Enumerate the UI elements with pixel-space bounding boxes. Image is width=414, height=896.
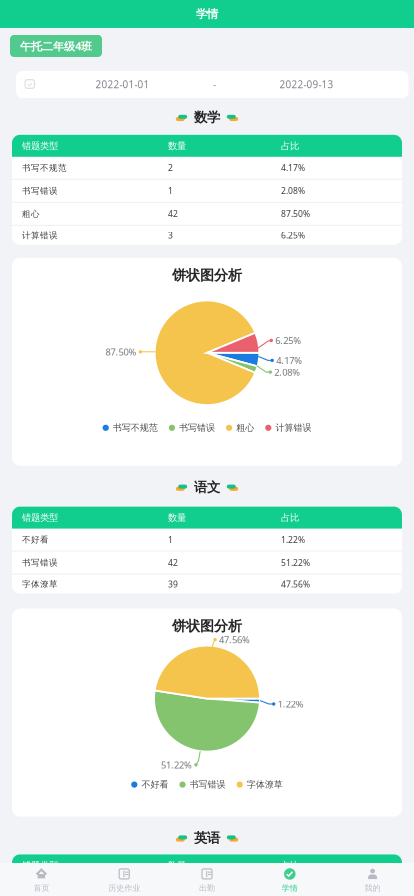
staticText: 语文	[194, 479, 220, 496]
staticText: 占比	[281, 140, 299, 152]
staticText: 6.25%	[275, 334, 301, 347]
staticText: 占比	[281, 859, 299, 871]
staticText: 错题类型	[22, 512, 58, 523]
staticText: 47.56%	[219, 633, 250, 646]
staticText: 计算错误	[22, 230, 58, 241]
staticText: 1	[168, 185, 173, 197]
staticText: 数量	[168, 512, 186, 523]
staticText: 学情	[196, 7, 218, 21]
staticText: 2.08%	[281, 185, 305, 197]
button[interactable]: 历史作业	[83, 863, 166, 896]
staticText: 错题类型	[22, 140, 58, 152]
staticText: 粗心	[22, 208, 40, 219]
staticText: 87.50%	[105, 345, 136, 358]
staticText: 4.17%	[281, 162, 305, 174]
button[interactable]: 学情	[248, 863, 331, 896]
staticText: 首页	[33, 883, 49, 893]
staticText: 51.22%	[281, 557, 310, 568]
button[interactable]: 午托二年级4班	[10, 35, 102, 57]
staticText: 51.22%	[161, 758, 192, 771]
staticText: 粗心	[236, 422, 254, 433]
staticText: 42	[168, 557, 178, 568]
staticText: 占比	[281, 512, 299, 523]
staticText: 英语	[194, 830, 220, 846]
staticText: 数量	[168, 859, 186, 871]
button[interactable]: 首页	[0, 863, 83, 896]
staticText: 4.17%	[276, 354, 302, 367]
staticText: 历史作业	[108, 883, 140, 893]
staticText: 字体潦草	[22, 579, 58, 589]
staticText: -	[213, 78, 216, 91]
staticText: 42	[168, 208, 178, 220]
staticText: 1.22%	[278, 698, 304, 710]
staticText: 2.08%	[274, 366, 300, 378]
staticText: 学情	[282, 883, 298, 893]
staticText: 不好看	[141, 779, 168, 790]
button[interactable]: 出勤	[166, 863, 248, 896]
staticText: 计算错误	[275, 422, 311, 433]
staticText: 2	[168, 162, 173, 174]
staticText: 数学	[194, 109, 220, 126]
staticText: 不好看	[22, 534, 49, 545]
staticText: 书写错误	[22, 557, 58, 568]
staticText: 书写错误	[22, 185, 58, 196]
button[interactable]: 我的	[331, 863, 414, 896]
staticText: 饼状图分析	[172, 266, 242, 284]
staticText: 书写不规范	[22, 162, 67, 173]
staticText: 4.17%	[281, 882, 305, 893]
staticText: 错题类型	[22, 859, 58, 871]
staticText: 47.56%	[281, 578, 310, 590]
staticText: 1	[168, 534, 173, 545]
staticText: 39	[168, 578, 178, 590]
staticText: 字体潦草	[247, 779, 283, 790]
button[interactable]: 2022-01-01	[16, 71, 408, 98]
staticText: 6.25%	[281, 229, 305, 241]
staticText: 1.22%	[281, 534, 305, 545]
staticText: 数量	[168, 140, 186, 152]
staticText: 饼状图分析	[172, 617, 242, 635]
staticText: 书写不规范	[113, 422, 158, 433]
staticText: 书写错误	[179, 422, 215, 433]
staticText: 3	[168, 229, 173, 241]
staticText: 2022-09-13	[280, 78, 334, 91]
staticText: 书写不规范	[22, 882, 67, 893]
staticText: 书写错误	[190, 779, 226, 790]
staticText: 我的	[365, 883, 381, 893]
staticText: 2022-01-01	[96, 78, 150, 91]
staticText: 午托二年级4班	[20, 38, 92, 54]
staticText: 87.50%	[281, 208, 310, 220]
staticText: 出勤	[199, 883, 215, 893]
